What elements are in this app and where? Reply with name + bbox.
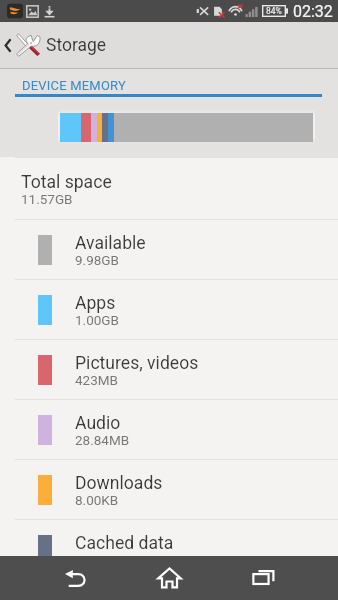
button[interactable]: Cached data: [0, 520, 338, 579]
button[interactable]: Pictures, videos: [0, 340, 338, 399]
staticText: Storage: [46, 35, 107, 56]
staticText: Cached data: [75, 533, 174, 554]
button[interactable]: Audio: [0, 400, 338, 459]
button[interactable]: Downloads: [0, 460, 338, 519]
button[interactable]: Back: [31, 556, 121, 600]
staticText: 8.00KB: [75, 492, 119, 508]
button[interactable]: Available: [0, 220, 338, 279]
staticText: Apps: [75, 293, 116, 314]
staticText: 11.57GB: [21, 191, 73, 207]
staticText: DEVICE MEMORY: [22, 78, 126, 93]
button[interactable]: Total space: [0, 158, 338, 219]
staticText: Total space: [21, 172, 112, 193]
other: Navigate up: [4, 38, 12, 53]
button[interactable]: DEVICE MEMORY: [0, 69, 338, 98]
staticText: Audio: [75, 413, 121, 434]
staticText: 423MB: [75, 372, 118, 388]
staticText: Downloads: [75, 473, 163, 494]
button[interactable]: Home: [124, 556, 214, 600]
staticText: 1.00GB: [75, 312, 119, 328]
staticText: 02:32: [293, 2, 333, 21]
staticText: 84%: [266, 6, 282, 16]
button[interactable]: Apps: [0, 280, 338, 339]
staticText: 116MB: [75, 552, 118, 568]
staticText: Available: [75, 233, 146, 254]
button[interactable]: Recent apps: [218, 555, 308, 599]
staticText: 9.98GB: [75, 252, 119, 268]
staticText: 28.84MB: [75, 432, 130, 448]
staticText: Pictures, videos: [75, 353, 199, 374]
button[interactable]: Navigate up: [0, 22, 338, 68]
